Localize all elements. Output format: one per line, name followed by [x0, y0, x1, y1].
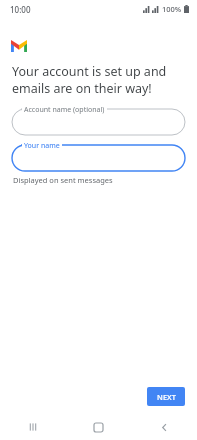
button[interactable]: Back	[131, 414, 197, 440]
staticText: NEXT	[157, 392, 176, 402]
button[interactable]: Recent apps	[0, 414, 65, 440]
staticText: Your account is set up and emails are on…	[12, 63, 167, 97]
staticText: Account name (optional)	[24, 105, 105, 115]
staticText: Displayed on sent messages	[13, 175, 113, 185]
staticText: 10:00	[10, 4, 31, 15]
staticText: 100%	[162, 4, 182, 14]
button[interactable]: Account name (optional)	[12, 109, 185, 135]
button[interactable]: Home	[65, 414, 131, 440]
staticText: Your name	[24, 141, 60, 151]
button[interactable]: Your name	[12, 145, 185, 171]
button[interactable]: NEXT	[147, 387, 185, 406]
